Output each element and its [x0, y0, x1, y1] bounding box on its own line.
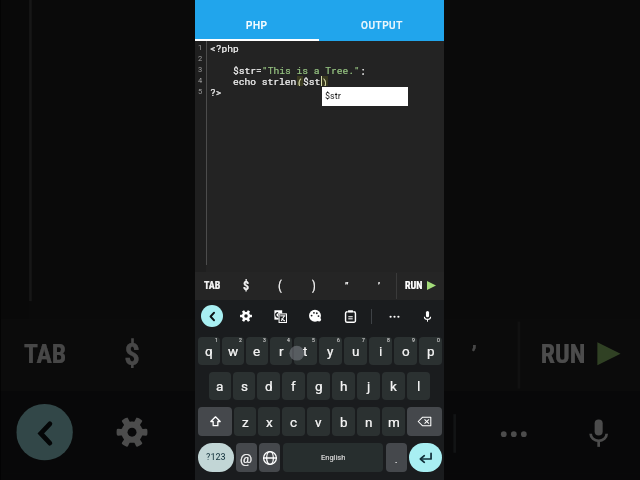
button[interactable]: )	[263, 319, 348, 391]
button[interactable]: English	[283, 443, 383, 472]
button[interactable]: n	[357, 407, 380, 436]
button[interactable]: More options	[383, 305, 405, 327]
staticText: ?123	[206, 452, 226, 463]
button[interactable]: b	[332, 407, 355, 436]
button[interactable]: q	[198, 337, 220, 365]
button[interactable]: l	[407, 372, 430, 400]
staticText: n	[365, 414, 373, 430]
staticText: u	[352, 343, 360, 359]
staticText: x	[266, 414, 273, 430]
staticText: 1	[215, 337, 218, 343]
button[interactable]: .	[386, 443, 407, 472]
staticText: m	[388, 414, 400, 430]
staticText: z	[242, 414, 249, 430]
staticText: o	[402, 343, 410, 359]
staticText: 5	[312, 337, 315, 343]
button[interactable]: ”	[330, 272, 363, 300]
staticText: (	[214, 337, 225, 373]
staticText: w	[228, 343, 239, 359]
button[interactable]: z	[234, 407, 256, 436]
staticText: ’	[471, 342, 479, 370]
staticText: (	[278, 279, 282, 293]
button[interactable]: $	[88, 319, 176, 391]
staticText: (	[297, 76, 303, 86]
button[interactable]: TAB	[1, 319, 88, 391]
button[interactable]: w	[222, 337, 244, 365]
button[interactable]: Clipboard	[339, 305, 361, 327]
button[interactable]: @	[236, 443, 257, 472]
button[interactable]: $	[229, 272, 263, 300]
button[interactable]: Enter	[409, 443, 442, 472]
button[interactable]: Translate	[191, 404, 248, 460]
button[interactable]: Back	[201, 305, 223, 327]
button[interactable]: v	[307, 407, 330, 436]
button[interactable]: d	[257, 372, 280, 400]
button[interactable]: h	[332, 372, 355, 400]
button[interactable]: RUN	[397, 272, 444, 300]
button[interactable]: x	[258, 407, 280, 436]
button[interactable]: e	[246, 337, 268, 365]
button[interactable]: j	[357, 372, 380, 400]
button[interactable]: Shift	[198, 407, 232, 436]
button[interactable]: Theme	[281, 404, 338, 460]
staticText: a	[216, 378, 224, 394]
button[interactable]: k	[382, 372, 405, 400]
button[interactable]: )	[297, 272, 330, 300]
button[interactable]: p	[419, 337, 442, 365]
button[interactable]: More options	[484, 404, 541, 460]
staticText: b	[340, 414, 348, 430]
button[interactable]: Clipboard	[371, 404, 428, 460]
staticText: d	[265, 378, 273, 394]
button[interactable]: (	[263, 272, 297, 300]
staticText: t	[303, 343, 308, 359]
staticText: $str=	[210, 64, 262, 75]
staticText: p	[427, 343, 435, 359]
staticText: $	[243, 279, 250, 293]
button[interactable]: Translate	[269, 305, 291, 327]
button[interactable]: a	[209, 372, 231, 400]
button[interactable]: Voice input	[416, 305, 438, 327]
staticText: 8	[387, 337, 390, 343]
button[interactable]: g	[307, 372, 330, 400]
button[interactable]: PHP	[195, 11, 319, 41]
button[interactable]: Voice input	[569, 404, 626, 460]
button[interactable]: RUN	[520, 319, 640, 391]
staticText: 2	[239, 337, 242, 343]
button[interactable]: c	[282, 407, 305, 436]
staticText: English	[321, 453, 346, 462]
button[interactable]: ’	[363, 272, 396, 300]
button[interactable]: i	[369, 337, 392, 365]
staticText: PHP	[246, 20, 268, 32]
button[interactable]: Settings	[104, 404, 160, 460]
button[interactable]: u	[344, 337, 367, 365]
button[interactable]: TAB	[195, 272, 229, 300]
staticText: "This is a Tree."	[262, 64, 360, 75]
button[interactable]: ?123	[198, 443, 234, 472]
staticText: )	[302, 337, 312, 373]
button[interactable]: s	[233, 372, 255, 400]
staticText: 2	[198, 54, 203, 63]
button[interactable]: t	[294, 337, 317, 365]
button[interactable]: y	[319, 337, 342, 365]
staticText: .	[395, 455, 398, 466]
button[interactable]: Language	[259, 443, 280, 472]
button[interactable]: Theme	[304, 305, 326, 327]
button[interactable]: o	[394, 337, 417, 365]
staticText: ”	[345, 281, 349, 292]
button[interactable]: (	[176, 319, 263, 391]
button[interactable]: Settings	[235, 305, 257, 327]
button[interactable]: f	[282, 372, 305, 400]
button[interactable]: Backspace	[407, 407, 442, 436]
button[interactable]: OUTPUT	[319, 11, 444, 41]
staticText: ’	[378, 281, 381, 292]
button[interactable]: Back	[16, 404, 73, 460]
staticText: y	[327, 343, 334, 359]
button[interactable]: $str	[322, 87, 408, 106]
staticText: r	[279, 343, 284, 359]
button[interactable]: m	[382, 407, 405, 436]
button[interactable]: r	[270, 337, 292, 365]
button[interactable]: ”	[348, 319, 433, 391]
staticText: echo strlen	[210, 75, 297, 86]
button[interactable]: ’	[433, 319, 518, 391]
staticText: $	[124, 337, 142, 373]
